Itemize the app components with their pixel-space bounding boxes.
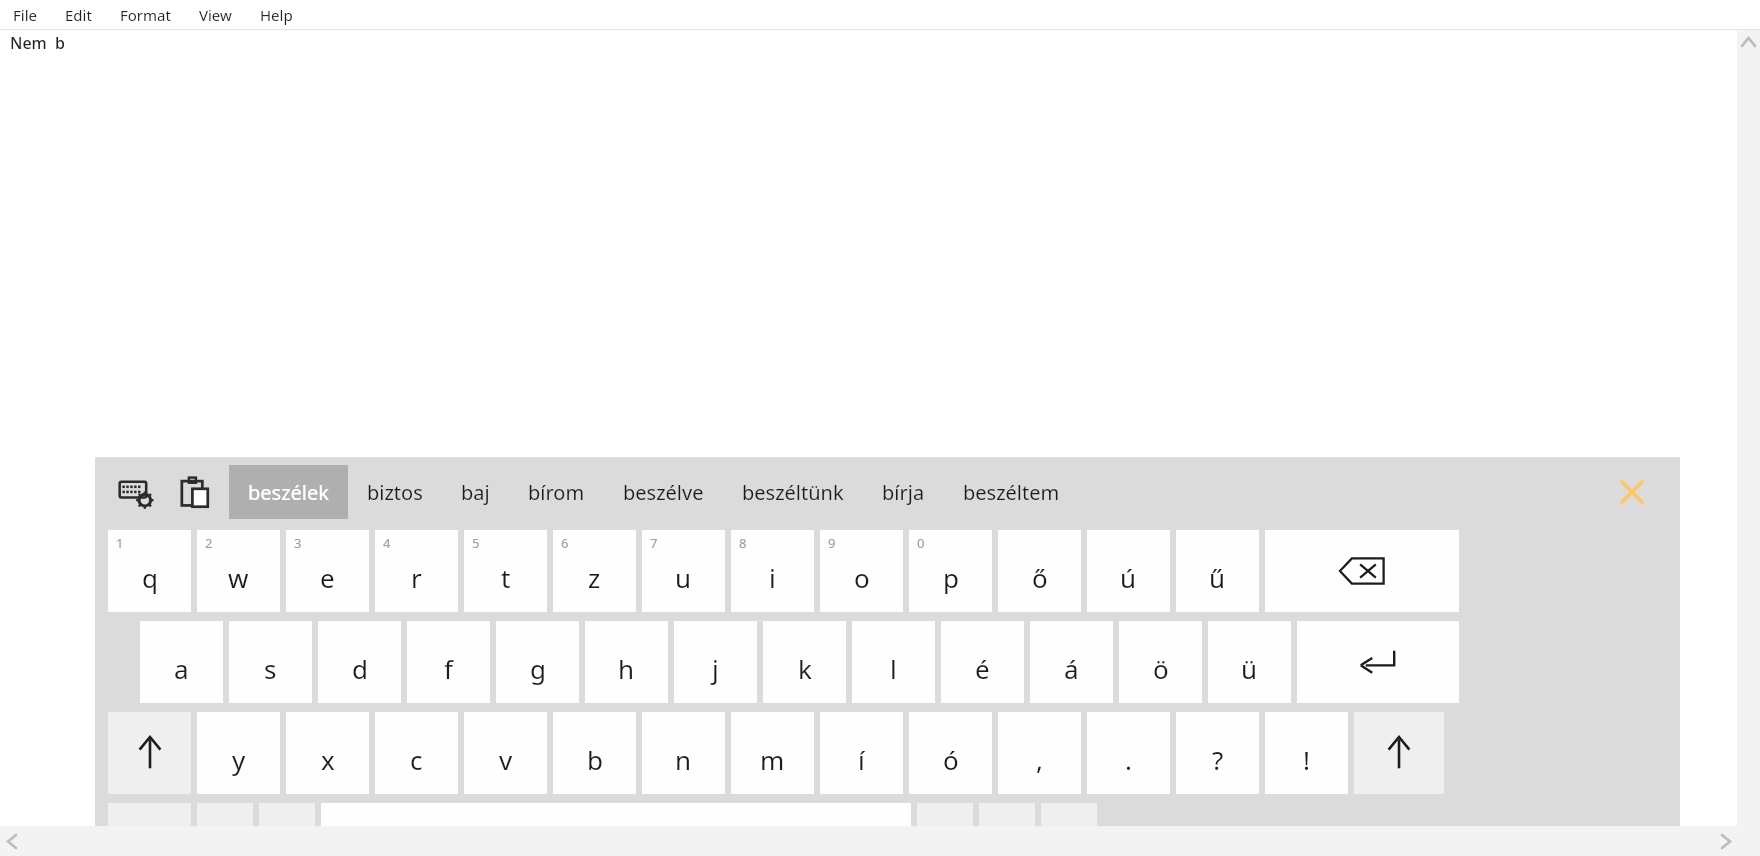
button[interactable]: 8 — [731, 530, 814, 612]
button[interactable]: 6 — [553, 530, 636, 612]
staticText: Nem b — [10, 32, 65, 54]
button[interactable]: . — [1087, 712, 1170, 794]
staticText: ? — [1212, 742, 1224, 777]
button[interactable]: beszélek — [229, 465, 348, 519]
staticText: ő — [1032, 560, 1048, 595]
button[interactable]: g — [496, 621, 579, 703]
button[interactable]: 7 — [642, 530, 725, 612]
button[interactable]: ó — [909, 712, 992, 794]
button[interactable]: c — [375, 712, 458, 794]
staticText: ú — [1120, 560, 1137, 595]
button[interactable]: beszélve — [604, 465, 723, 519]
button[interactable]: j — [674, 621, 757, 703]
button[interactable]: Shift — [108, 712, 191, 794]
button[interactable]: Enter — [1297, 621, 1459, 703]
button[interactable]: baj — [442, 465, 509, 519]
staticText: e — [320, 560, 335, 595]
staticText: n — [675, 742, 692, 777]
staticText: Edit — [65, 5, 92, 25]
staticText: bírom — [528, 479, 585, 506]
button[interactable]: ü — [1208, 621, 1291, 703]
button[interactable]: 3 — [286, 530, 369, 612]
button[interactable]: é — [941, 621, 1024, 703]
button[interactable]: Format — [118, 2, 173, 28]
button[interactable]: Scroll up — [1737, 30, 1760, 53]
button[interactable]: Help — [258, 2, 295, 28]
staticText: l — [890, 651, 897, 686]
button[interactable]: v — [464, 712, 547, 794]
button[interactable]: f — [407, 621, 490, 703]
staticText: . — [1125, 742, 1132, 777]
button[interactable]: h — [585, 621, 668, 703]
staticText: 3 — [294, 534, 302, 552]
button[interactable]: x — [286, 712, 369, 794]
button[interactable]: k — [763, 621, 846, 703]
button[interactable]: y — [197, 712, 280, 794]
button[interactable]: Edit — [63, 2, 94, 28]
button[interactable]: Clipboard — [171, 469, 217, 515]
staticText: h — [618, 651, 635, 686]
button[interactable]: beszéltem — [944, 465, 1079, 519]
button[interactable]: á — [1030, 621, 1113, 703]
button[interactable]: m — [731, 712, 814, 794]
button[interactable]: , — [998, 712, 1081, 794]
button[interactable]: biztos — [348, 465, 442, 519]
staticText: j — [712, 651, 719, 686]
button[interactable]: bírja — [863, 465, 944, 519]
staticText: beszélve — [623, 479, 704, 506]
button[interactable]: View — [197, 2, 234, 28]
button[interactable]: ! — [1265, 712, 1348, 794]
button[interactable]: 0 — [909, 530, 992, 612]
button[interactable]: Keyboard settings — [113, 469, 159, 515]
staticText: x — [321, 742, 335, 777]
staticText: g — [530, 651, 546, 686]
button[interactable]: 1 — [108, 530, 191, 612]
button[interactable]: Scroll right — [1714, 830, 1737, 853]
staticText: 1 — [116, 534, 124, 552]
button[interactable]: d — [318, 621, 401, 703]
staticText: p — [943, 560, 959, 595]
staticText: m — [760, 742, 785, 777]
button[interactable]: ű — [1176, 530, 1259, 612]
button[interactable]: 4 — [375, 530, 458, 612]
staticText: ü — [1241, 651, 1258, 686]
staticText: View — [199, 5, 232, 25]
button[interactable]: ő — [998, 530, 1081, 612]
button[interactable]: ? — [1176, 712, 1259, 794]
staticText: ö — [1153, 651, 1169, 686]
button[interactable]: ú — [1087, 530, 1170, 612]
staticText: , — [1036, 742, 1043, 777]
button[interactable]: File — [11, 2, 39, 28]
button[interactable]: s — [229, 621, 312, 703]
staticText: q — [142, 560, 158, 595]
staticText: d — [352, 651, 368, 686]
staticText: Format — [120, 5, 171, 25]
button[interactable]: bírom — [509, 465, 604, 519]
button[interactable]: 2 — [197, 530, 280, 612]
button[interactable]: a — [140, 621, 223, 703]
button[interactable]: n — [642, 712, 725, 794]
button[interactable]: 9 — [820, 530, 903, 612]
staticText: k — [798, 651, 812, 686]
button[interactable]: Backspace — [1265, 530, 1459, 612]
button[interactable]: Space — [321, 803, 911, 850]
button[interactable]: l — [852, 621, 935, 703]
staticText: 0 — [917, 534, 925, 552]
button[interactable]: ö — [1119, 621, 1202, 703]
staticText: ! — [1303, 742, 1310, 777]
button[interactable]: í — [820, 712, 903, 794]
button[interactable]: beszéltünk — [723, 465, 863, 519]
button[interactable]: 5 — [464, 530, 547, 612]
staticText: á — [1064, 651, 1079, 686]
button[interactable]: Shift — [1354, 712, 1444, 794]
button[interactable]: b — [553, 712, 636, 794]
button[interactable]: Scroll left — [0, 830, 23, 853]
button[interactable]: Close keyboard — [1604, 464, 1660, 520]
